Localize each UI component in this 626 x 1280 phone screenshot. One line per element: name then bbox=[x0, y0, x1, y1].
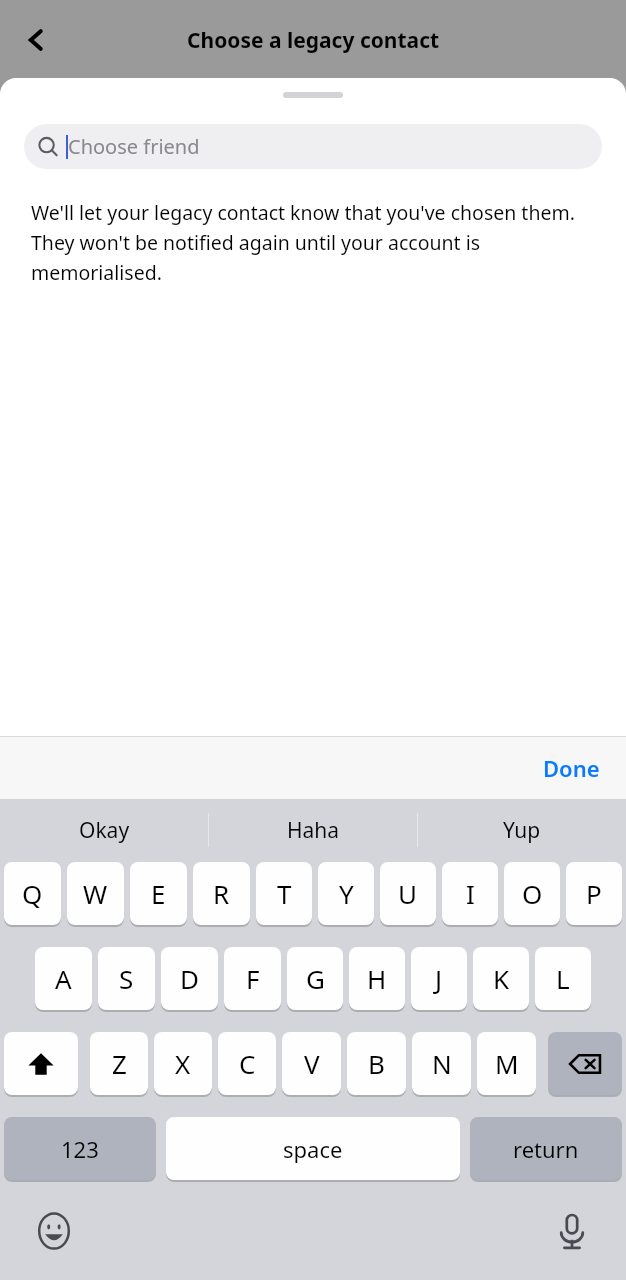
button[interactable]: Q bbox=[4, 862, 61, 925]
staticText: A bbox=[55, 961, 72, 996]
staticText: Yup bbox=[503, 816, 541, 845]
button[interactable]: space bbox=[166, 1117, 460, 1180]
staticText: Z bbox=[112, 1046, 127, 1081]
button[interactable]: Back bbox=[8, 12, 64, 68]
staticText: K bbox=[493, 961, 510, 996]
button[interactable]: Yup bbox=[418, 799, 626, 861]
staticText: space bbox=[283, 1134, 343, 1164]
button[interactable] bbox=[548, 1032, 622, 1095]
button[interactable]: return bbox=[470, 1117, 622, 1180]
staticText: Haha bbox=[287, 816, 340, 845]
button[interactable]: D bbox=[161, 947, 218, 1010]
button[interactable]: Z bbox=[90, 1032, 148, 1095]
staticText: T bbox=[277, 876, 292, 911]
staticText: X bbox=[175, 1046, 191, 1081]
button[interactable]: F bbox=[224, 947, 281, 1010]
button[interactable]: V bbox=[282, 1032, 341, 1095]
staticText: N bbox=[432, 1046, 452, 1081]
staticText: U bbox=[398, 876, 418, 911]
other: Backspace bbox=[548, 1032, 622, 1097]
staticText: S bbox=[119, 961, 134, 996]
staticText: B bbox=[368, 1046, 385, 1081]
button[interactable]: K bbox=[473, 947, 529, 1010]
button[interactable]: O bbox=[504, 862, 560, 925]
button[interactable]: E bbox=[130, 862, 187, 925]
button[interactable]: A bbox=[35, 947, 92, 1010]
staticText: M bbox=[495, 1046, 519, 1081]
button[interactable]: N bbox=[412, 1032, 471, 1095]
staticText: Choose friend bbox=[68, 133, 200, 160]
staticText: W bbox=[83, 876, 108, 911]
button[interactable]: W bbox=[67, 862, 124, 925]
staticText: L bbox=[556, 961, 570, 996]
staticText: Done bbox=[543, 753, 600, 783]
button[interactable]: U bbox=[380, 862, 436, 925]
button[interactable]: M bbox=[477, 1032, 536, 1095]
staticText: H bbox=[367, 961, 387, 996]
button[interactable]: Okay bbox=[0, 799, 208, 861]
button[interactable]: Choose friend bbox=[24, 124, 602, 169]
other: Shift bbox=[4, 1032, 78, 1097]
button[interactable]: 123 bbox=[4, 1117, 156, 1180]
button[interactable]: S bbox=[98, 947, 155, 1010]
staticText: Y bbox=[339, 876, 354, 911]
button[interactable]: R bbox=[193, 862, 250, 925]
button[interactable]: Emoji keyboard bbox=[24, 1201, 84, 1261]
staticText: D bbox=[180, 961, 199, 996]
staticText: F bbox=[246, 961, 260, 996]
button[interactable]: L bbox=[535, 947, 591, 1010]
button[interactable]: Haha bbox=[209, 799, 417, 861]
button[interactable]: G bbox=[287, 947, 343, 1010]
button[interactable]: H bbox=[349, 947, 405, 1010]
button[interactable]: J bbox=[411, 947, 467, 1010]
staticText: Q bbox=[22, 876, 43, 911]
button[interactable]: Done bbox=[531, 747, 612, 789]
button[interactable]: B bbox=[347, 1032, 406, 1095]
staticText: I bbox=[466, 876, 475, 911]
staticText: E bbox=[151, 876, 166, 911]
staticText: 123 bbox=[61, 1134, 99, 1164]
button[interactable]: Dictation bbox=[542, 1201, 602, 1261]
staticText: C bbox=[239, 1046, 256, 1081]
staticText: G bbox=[306, 961, 325, 996]
staticText: return bbox=[513, 1134, 579, 1164]
staticText: Okay bbox=[79, 816, 130, 845]
button[interactable]: Y bbox=[318, 862, 374, 925]
button[interactable]: P bbox=[566, 862, 622, 925]
staticText: R bbox=[213, 876, 230, 911]
staticText: J bbox=[435, 961, 443, 996]
staticText: Choose a legacy contact bbox=[187, 26, 440, 55]
button[interactable] bbox=[4, 1032, 78, 1095]
staticText: We'll let your legacy contact know that … bbox=[31, 199, 595, 285]
button[interactable]: I bbox=[442, 862, 498, 925]
staticText: V bbox=[304, 1046, 320, 1081]
button[interactable]: X bbox=[154, 1032, 212, 1095]
staticText: P bbox=[586, 876, 602, 911]
button[interactable]: T bbox=[256, 862, 312, 925]
staticText: O bbox=[522, 876, 543, 911]
button[interactable]: C bbox=[218, 1032, 276, 1095]
